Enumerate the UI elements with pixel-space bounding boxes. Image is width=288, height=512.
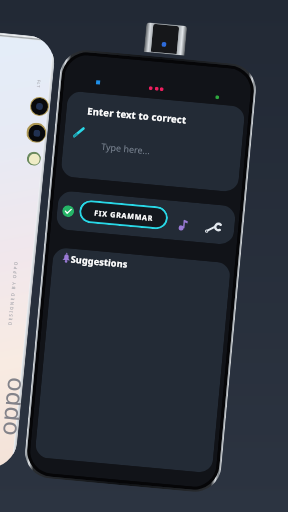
- button[interactable]: FIX GRAMMAR: [78, 199, 169, 230]
- staticText: oppo: [0, 375, 23, 436]
- staticText: Type here...: [101, 140, 151, 156]
- staticText: FLT: [36, 79, 42, 89]
- staticText: DESIGNED BY OPPO: [6, 260, 19, 325]
- staticText: FIX GRAMMAR: [94, 207, 154, 223]
- staticText: Suggestions: [70, 253, 128, 271]
- button[interactable]: Speak: [178, 218, 188, 231]
- button[interactable]: Settings: [205, 222, 223, 234]
- button[interactable]: Enter text to correct: [60, 91, 245, 192]
- staticText: Enter text to correct: [87, 104, 188, 127]
- button[interactable]: Accepted: [62, 205, 75, 218]
